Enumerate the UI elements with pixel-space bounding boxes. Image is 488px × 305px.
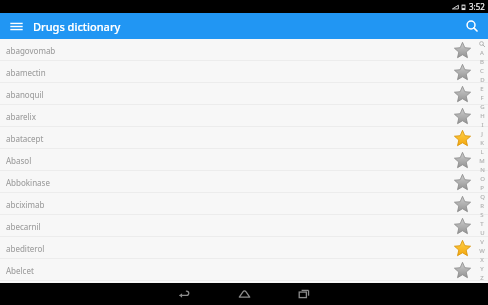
staticText: E	[480, 85, 484, 93]
button[interactable]: abanoquil	[0, 83, 488, 105]
button[interactable]: abamectin	[0, 61, 488, 83]
staticText: K	[480, 139, 484, 147]
staticText: abciximab	[6, 199, 45, 210]
button[interactable]: Add abagovomab to favorites	[452, 40, 472, 60]
button[interactable]: Home	[234, 284, 254, 304]
button[interactable]: Search	[461, 15, 483, 37]
staticText: abediterol	[6, 243, 45, 254]
staticText: I	[481, 121, 484, 129]
button[interactable]: Add abciximab to favorites	[452, 194, 472, 214]
staticText: C	[480, 67, 484, 75]
staticText: abamectin	[6, 67, 46, 78]
staticText: abecarnil	[6, 221, 41, 232]
staticText: Abelcet	[6, 265, 34, 276]
button[interactable]: abagovomab	[0, 39, 488, 61]
staticText: 3:52	[469, 1, 485, 12]
button[interactable]: abatacept	[0, 127, 488, 149]
button[interactable]: Add abanoquil to favorites	[452, 84, 472, 104]
staticText: B	[480, 58, 484, 66]
staticText: abagovomab	[6, 45, 56, 56]
staticText: V	[480, 238, 484, 246]
button[interactable]: Add abamectin to favorites	[452, 62, 472, 82]
staticText: Y	[480, 265, 484, 273]
staticText: Q	[480, 193, 485, 201]
button[interactable]: Abelcet	[0, 259, 488, 281]
staticText: J	[481, 130, 483, 138]
staticText: P	[480, 184, 484, 192]
staticText: T	[480, 220, 484, 228]
staticText: abanoquil	[6, 89, 44, 100]
staticText: R	[480, 202, 484, 210]
button[interactable]: Add Abasol to favorites	[452, 150, 472, 170]
button[interactable]: Open navigation drawer	[6, 16, 26, 36]
button[interactable]: Recent apps	[294, 284, 314, 304]
button[interactable]: Back	[174, 284, 194, 304]
button[interactable]: Abbokinase	[0, 171, 488, 193]
staticText: G	[480, 103, 485, 111]
button[interactable]: abarelix	[0, 105, 488, 127]
staticText: S	[480, 211, 484, 219]
button[interactable]: Add Abbokinase to favorites	[452, 172, 472, 192]
staticText: Z	[480, 274, 484, 282]
button[interactable]: Add abecarnil to favorites	[452, 216, 472, 236]
button[interactable]: Add Abelcet to favorites	[452, 260, 472, 280]
staticText: N	[480, 166, 485, 174]
staticText: A	[480, 49, 484, 57]
staticText: Drugs dictionary	[33, 19, 121, 34]
staticText: Abbokinase	[6, 177, 50, 188]
staticText: L	[480, 148, 484, 156]
button[interactable]: abediterol	[0, 237, 488, 259]
staticText: abarelix	[6, 111, 36, 122]
button[interactable]: abecarnil	[0, 215, 488, 237]
staticText: U	[480, 229, 485, 237]
button[interactable]: Alphabet fast scroll index	[476, 39, 488, 283]
button[interactable]: Add abarelix to favorites	[452, 106, 472, 126]
staticText: O	[480, 175, 485, 183]
staticText: D	[480, 76, 485, 84]
staticText: X	[480, 256, 484, 264]
staticText: F	[480, 94, 484, 102]
staticText: W	[479, 247, 485, 255]
button[interactable]: Remove abatacept from favorites	[452, 128, 472, 148]
staticText: Abasol	[6, 155, 32, 166]
button[interactable]: abciximab	[0, 193, 488, 215]
staticText: H	[480, 112, 485, 120]
button[interactable]: Remove abediterol from favorites	[452, 238, 472, 258]
staticText: abatacept	[6, 133, 44, 144]
button[interactable]: Abasol	[0, 149, 488, 171]
staticText: M	[479, 157, 485, 165]
